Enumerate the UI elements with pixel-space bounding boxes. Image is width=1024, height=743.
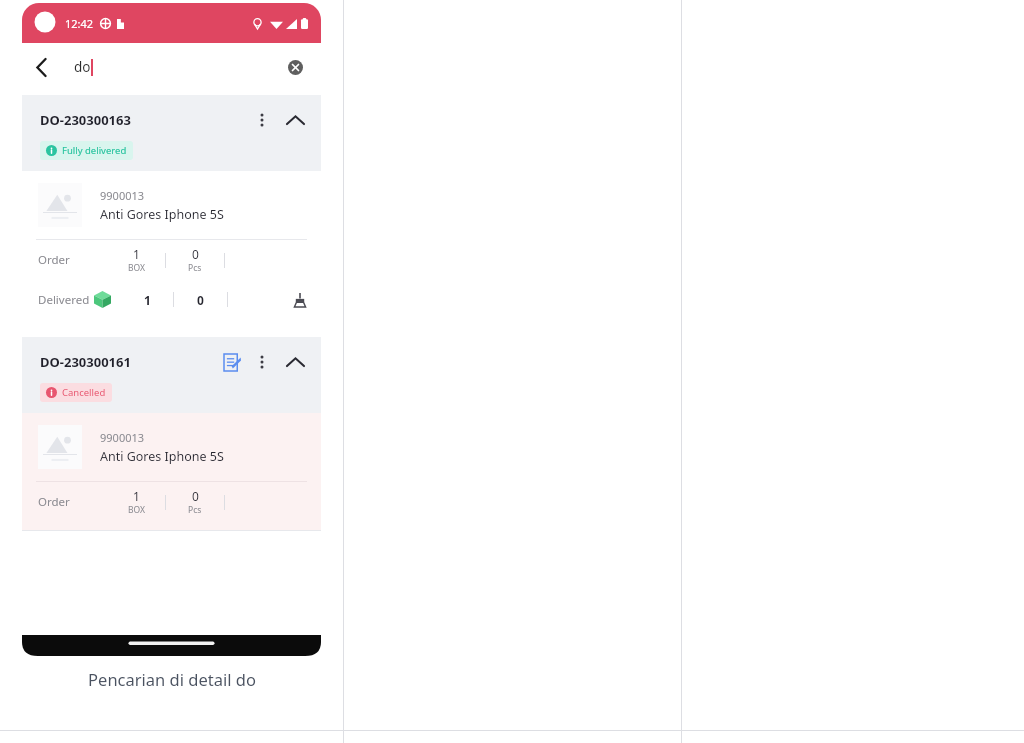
button[interactable]: Collapse [281,348,309,376]
staticText: 9900013 [100,430,145,445]
button[interactable]: Back [22,47,62,87]
staticText: DO-230300163 [40,111,131,129]
staticText: BOX [128,262,145,274]
button[interactable]: Collapse [281,106,309,134]
button[interactable]: DO-230300161 [22,337,321,531]
staticText: 0 [197,292,204,308]
staticText: 0 [192,488,199,504]
staticText: Delivered [38,292,94,308]
button[interactable]: DO-230300163 [22,95,321,325]
staticText: Fully delivered [62,144,127,157]
staticText: Anti Gores Iphone 5S [100,448,224,465]
staticText: Pcs [188,504,202,516]
staticText: 12:42 [65,16,94,31]
staticText: Order [38,252,108,268]
button[interactable]: More options [249,349,275,375]
staticText: BOX [128,504,145,516]
staticText: Anti Gores Iphone 5S [100,206,224,223]
staticText: 1 [133,488,140,504]
staticText: 0 [192,246,199,262]
button[interactable]: Clear search [275,47,315,87]
staticText: DO-230300161 [40,353,131,371]
button[interactable]: Clear quantity [289,289,311,311]
button[interactable]: Edit document [219,349,245,375]
button[interactable]: More options [249,107,275,133]
staticText: 9900013 [100,188,145,203]
staticText: 1 [144,292,151,308]
staticText: Pcs [188,262,202,274]
staticText: 1 [133,246,140,262]
staticText: Pencarian di detail do [88,668,256,690]
staticText: Cancelled [62,386,106,399]
staticText: Order [38,494,108,510]
staticText: do [74,58,91,76]
